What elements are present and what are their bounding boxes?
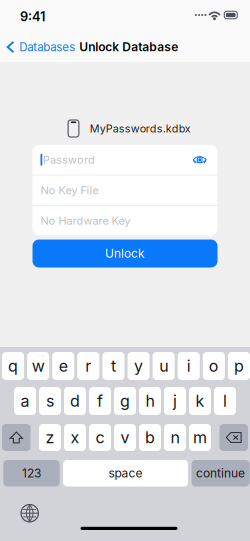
staticText: t [111, 356, 116, 376]
button[interactable]: h [139, 387, 161, 415]
staticText: o [209, 356, 219, 376]
button[interactable]: continue [191, 460, 250, 486]
staticText: g [120, 391, 130, 411]
staticText: MyPasswords.kdbx [90, 122, 191, 135]
staticText: 9:41 [20, 9, 45, 24]
staticText: m [193, 428, 207, 447]
staticText: l [223, 391, 227, 411]
staticText: 123 [22, 466, 41, 480]
button[interactable]: g [114, 387, 136, 415]
staticText: space [109, 466, 143, 480]
button[interactable]: k [189, 387, 211, 415]
staticText: n [170, 428, 179, 447]
staticText: continue [196, 466, 245, 480]
button[interactable]: Show password [188, 151, 211, 168]
button[interactable]: e [52, 352, 74, 380]
staticText: Unlock [105, 246, 145, 261]
button[interactable]: a [14, 387, 36, 415]
staticText: f [97, 391, 103, 411]
button[interactable]: Shift [2, 424, 31, 451]
button[interactable]: u [153, 352, 175, 380]
staticText: No Hardware Key [40, 214, 130, 227]
button[interactable]: r [77, 352, 99, 380]
staticText: a [20, 391, 29, 411]
button[interactable]: j [164, 387, 186, 415]
button[interactable]: y [127, 352, 150, 380]
staticText: j [173, 391, 177, 411]
staticText: Unlock Database [79, 40, 178, 54]
button[interactable]: m [189, 424, 211, 451]
button[interactable]: s [39, 387, 61, 415]
staticText: Password [43, 153, 95, 166]
button[interactable]: n [164, 424, 186, 451]
staticText: w [32, 356, 45, 376]
button[interactable]: 123 [3, 460, 60, 486]
staticText: s [46, 391, 54, 411]
button[interactable]: c [89, 424, 111, 451]
staticText: v [120, 428, 129, 447]
button[interactable]: o [203, 352, 225, 380]
staticText: r [85, 356, 91, 376]
button[interactable]: q [2, 352, 24, 380]
staticText: Databases [19, 40, 75, 54]
button[interactable]: t [102, 352, 124, 380]
button[interactable]: i [178, 352, 200, 380]
staticText: p [234, 356, 244, 376]
staticText: u [159, 356, 168, 376]
button[interactable]: l [214, 387, 236, 415]
staticText: k [195, 391, 204, 411]
staticText: c [95, 428, 104, 447]
button[interactable]: Next keyboard [16, 499, 43, 527]
button[interactable]: Unlock [32, 239, 217, 267]
staticText: y [134, 356, 143, 376]
button[interactable]: space [63, 460, 188, 486]
staticText: b [145, 428, 155, 447]
staticText: h [145, 391, 154, 411]
button[interactable]: w [27, 352, 49, 380]
staticText: e [59, 356, 68, 376]
button[interactable]: z [39, 424, 61, 451]
staticText: x [70, 428, 79, 447]
button[interactable]: f [89, 387, 111, 415]
staticText: i [187, 356, 191, 376]
staticText: q [8, 356, 18, 376]
staticText: d [70, 391, 80, 411]
staticText: z [45, 428, 54, 447]
button[interactable]: p [228, 352, 250, 380]
button[interactable]: x [64, 424, 86, 451]
button[interactable]: Databases [0, 34, 78, 60]
button[interactable]: v [114, 424, 136, 451]
button[interactable]: Delete [219, 424, 248, 451]
staticText: No Key File [40, 184, 98, 197]
button[interactable]: d [64, 387, 86, 415]
button[interactable]: b [139, 424, 161, 451]
